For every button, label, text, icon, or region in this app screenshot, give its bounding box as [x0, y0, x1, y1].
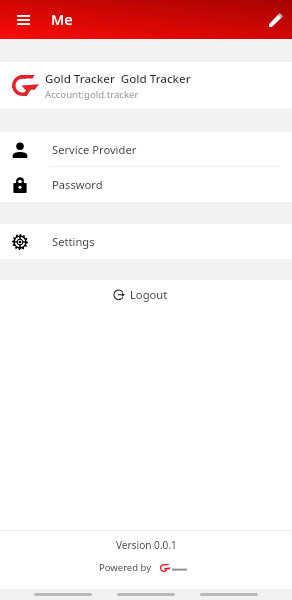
button[interactable]: Logout — [110, 285, 171, 304]
staticText: Me — [51, 9, 73, 29]
staticText: Password — [52, 177, 103, 192]
button[interactable]: Password — [0, 167, 292, 202]
staticText: Logout — [130, 287, 168, 302]
staticText: Service Provider — [52, 142, 137, 157]
staticText: Account:gold.tracker — [45, 88, 139, 101]
button[interactable]: Settings — [0, 224, 292, 259]
staticText: Gold Tracker Gold Tracker — [45, 71, 191, 87]
staticText: Settings — [52, 234, 95, 249]
staticText: Powered by — [99, 561, 152, 574]
button[interactable]: Menu — [9, 6, 37, 34]
button[interactable]: Navigation — [200, 593, 258, 596]
button[interactable]: Navigation — [34, 593, 92, 596]
staticText: Version 0.0.1 — [116, 538, 177, 552]
button[interactable]: Gold Tracker Gold Tracker — [0, 62, 292, 109]
button[interactable]: Service Provider — [0, 132, 292, 167]
button[interactable]: Navigation — [117, 593, 175, 596]
button[interactable]: Edit — [262, 6, 290, 34]
